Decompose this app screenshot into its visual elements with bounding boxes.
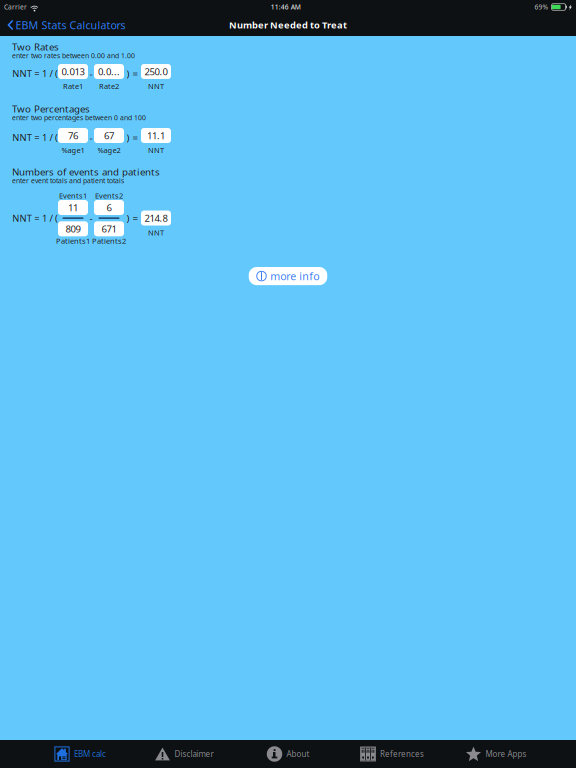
staticText: References bbox=[380, 749, 424, 759]
staticText: Carrier bbox=[4, 3, 27, 11]
staticText: 671 bbox=[101, 222, 116, 235]
staticText: Numbers of events and patients bbox=[12, 165, 160, 178]
staticText: enter event totals and patient totals bbox=[12, 176, 124, 185]
staticText: ) = bbox=[126, 67, 138, 80]
staticText: NNT bbox=[148, 145, 164, 155]
staticText: 250.0 bbox=[144, 65, 167, 78]
staticText: 11 bbox=[68, 201, 78, 214]
staticText: NNT bbox=[148, 228, 164, 238]
staticText: More Apps bbox=[485, 749, 526, 759]
staticText: 76 bbox=[68, 129, 78, 142]
button[interactable]: more info bbox=[249, 267, 327, 285]
staticText: enter two percentages between 0 and 100 bbox=[12, 113, 146, 122]
staticText: 6 bbox=[106, 201, 111, 214]
button[interactable]: 250.0 bbox=[141, 64, 171, 79]
button[interactable]: 671 bbox=[94, 221, 124, 236]
staticText: Events2 bbox=[95, 190, 123, 201]
staticText: NNT bbox=[148, 81, 164, 91]
staticText: Rate1 bbox=[63, 81, 83, 91]
button[interactable]: 76 bbox=[58, 128, 88, 143]
staticText: 214.8 bbox=[144, 211, 167, 225]
staticText: NNT = 1 / ( bbox=[12, 67, 58, 80]
staticText: 11.1 bbox=[147, 129, 165, 142]
button[interactable]: EBM Stats Calculators bbox=[0, 15, 133, 35]
button[interactable]: EBM calc bbox=[28, 740, 132, 768]
button[interactable]: More Apps bbox=[444, 740, 548, 768]
staticText: NNT = 1 / ( bbox=[12, 212, 58, 224]
staticText: 0.013 bbox=[61, 65, 84, 78]
button[interactable]: 0.0... bbox=[94, 64, 124, 79]
staticText: %age1 bbox=[61, 145, 84, 155]
staticText: 67 bbox=[104, 129, 114, 142]
staticText: Events1 bbox=[59, 190, 87, 201]
staticText: Disclaimer bbox=[174, 749, 213, 759]
staticText: About bbox=[286, 749, 309, 759]
button[interactable]: 0.013 bbox=[58, 64, 88, 79]
button[interactable]: 11.1 bbox=[141, 128, 171, 143]
button[interactable]: References bbox=[340, 740, 444, 768]
staticText: Patients1 bbox=[56, 236, 90, 246]
staticText: Number Needed to Treat bbox=[229, 19, 347, 31]
button[interactable]: 809 bbox=[58, 221, 88, 236]
staticText: 0.0... bbox=[98, 65, 120, 78]
staticText: - bbox=[89, 67, 92, 80]
staticText: NNT = 1 / ( bbox=[12, 131, 58, 144]
staticText: %age2 bbox=[97, 145, 120, 155]
button[interactable]: About bbox=[236, 740, 340, 768]
staticText: - bbox=[89, 131, 92, 144]
staticText: Two Percentages bbox=[12, 102, 90, 115]
button[interactable]: 11 bbox=[58, 200, 88, 215]
staticText: Rate2 bbox=[99, 81, 119, 91]
staticText: enter two rates between 0.00 and 1.00 bbox=[12, 51, 135, 60]
button[interactable]: Disclaimer bbox=[132, 740, 236, 768]
button[interactable]: 67 bbox=[94, 128, 124, 143]
staticText: Patients2 bbox=[92, 236, 126, 246]
button[interactable]: 214.8 bbox=[141, 211, 171, 226]
staticText: EBM Stats Calculators bbox=[15, 18, 125, 32]
staticText: 69% bbox=[534, 3, 548, 11]
button[interactable]: 6 bbox=[94, 200, 124, 215]
staticText: ) = bbox=[126, 211, 138, 225]
staticText: - bbox=[89, 211, 92, 225]
staticText: more info bbox=[270, 269, 319, 283]
staticText: EBM calc bbox=[74, 749, 106, 759]
staticText: 11:46 AM bbox=[271, 3, 301, 11]
staticText: Two Rates bbox=[12, 40, 59, 53]
staticText: 809 bbox=[65, 222, 80, 235]
staticText: ) = bbox=[126, 131, 138, 144]
